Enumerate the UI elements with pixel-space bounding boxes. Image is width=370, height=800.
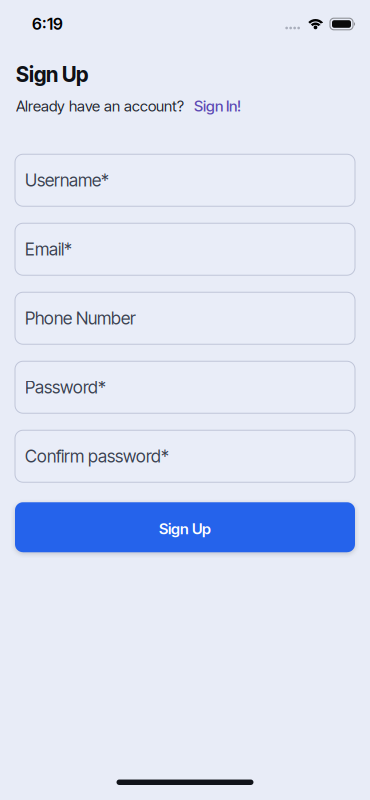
staticText: Confirm password* xyxy=(25,446,169,467)
staticText: Password* xyxy=(25,377,106,398)
staticText: Phone Number xyxy=(25,308,136,329)
button[interactable]: Sign In! xyxy=(184,97,241,115)
staticText: Sign Up xyxy=(159,520,211,538)
staticText: Already have an account? xyxy=(16,97,184,115)
button[interactable]: Password* xyxy=(15,361,355,413)
button[interactable]: Sign Up xyxy=(15,502,355,552)
staticText: Sign In! xyxy=(194,97,241,115)
staticText: Email* xyxy=(25,239,72,260)
button[interactable]: Email* xyxy=(15,223,355,275)
staticText: Sign Up xyxy=(16,62,88,87)
button[interactable]: Confirm password* xyxy=(15,430,355,482)
button[interactable]: Phone Number xyxy=(15,292,355,344)
staticText: 6:19 xyxy=(32,14,63,34)
staticText: Username* xyxy=(25,170,109,191)
button[interactable]: Username* xyxy=(15,154,355,206)
